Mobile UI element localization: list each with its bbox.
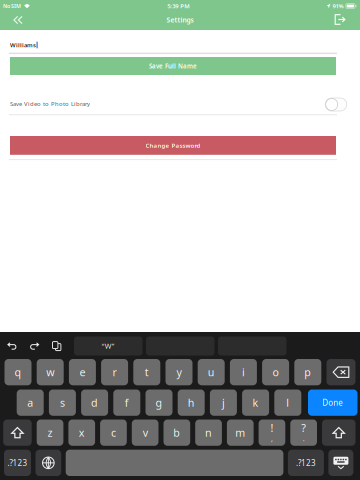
- button[interactable]: i: [230, 359, 257, 385]
- staticText: .?123: [7, 457, 27, 468]
- staticText: k: [253, 395, 259, 410]
- staticText: “W”: [102, 341, 115, 351]
- staticText: Williams: [10, 41, 36, 49]
- button[interactable]: f: [113, 389, 140, 416]
- button[interactable]: u: [198, 359, 225, 385]
- button[interactable]: .?123: [4, 450, 31, 476]
- button[interactable]: !: [259, 419, 285, 446]
- button[interactable]: x: [68, 419, 95, 446]
- staticText: ?: [301, 420, 306, 435]
- button[interactable]: v: [132, 419, 158, 446]
- button[interactable]: Done: [308, 389, 357, 416]
- staticText: o: [273, 365, 279, 379]
- button[interactable]: y: [165, 359, 192, 385]
- staticText: j: [222, 395, 225, 410]
- button[interactable]: Back: [7, 12, 29, 28]
- staticText: i: [242, 365, 245, 379]
- staticText: Settings: [166, 15, 193, 25]
- button[interactable]: Next keyboard: [35, 450, 61, 476]
- staticText: Save Full Name: [149, 62, 197, 70]
- staticText: q: [14, 365, 21, 379]
- staticText: No SIM: [3, 2, 21, 10]
- button[interactable]: g: [145, 389, 172, 416]
- button[interactable]: s: [49, 389, 76, 416]
- staticText: u: [208, 365, 215, 379]
- staticText: y: [176, 365, 181, 379]
- staticText: n: [205, 425, 212, 440]
- staticText: v: [143, 425, 148, 440]
- button[interactable]: q: [4, 359, 31, 385]
- button[interactable]: “W”: [74, 336, 142, 355]
- staticText: f: [125, 395, 129, 410]
- button[interactable]: .?123: [288, 450, 324, 476]
- staticText: c: [111, 425, 116, 440]
- button[interactable]: ?: [290, 419, 317, 446]
- button[interactable]: e: [69, 359, 96, 385]
- button[interactable]: p: [294, 359, 321, 385]
- button[interactable]: Shift: [322, 419, 355, 446]
- staticText: m: [235, 425, 245, 440]
- staticText: ,: [271, 433, 273, 443]
- button[interactable]: Change Password: [10, 136, 336, 155]
- button[interactable]: Save Video to Photo Library: [322, 95, 350, 113]
- staticText: w: [46, 365, 54, 379]
- staticText: t: [145, 365, 149, 379]
- button[interactable]: j: [210, 389, 237, 416]
- button[interactable]: a: [17, 389, 44, 416]
- button[interactable]: h: [178, 389, 205, 416]
- button[interactable]: o: [262, 359, 289, 385]
- staticText: d: [91, 395, 98, 410]
- staticText: s: [60, 395, 65, 410]
- button[interactable]: n: [195, 419, 222, 446]
- staticText: .?123: [296, 457, 316, 468]
- staticText: !: [270, 420, 273, 435]
- staticText: l: [286, 395, 289, 410]
- staticText: r: [113, 365, 117, 379]
- button[interactable]: Redo: [29, 336, 40, 355]
- staticText: Change Password: [145, 141, 200, 149]
- staticText: h: [188, 395, 195, 410]
- staticText: e: [79, 365, 85, 379]
- button[interactable]: l: [274, 389, 301, 416]
- button[interactable]: b: [163, 419, 190, 446]
- button[interactable]: z: [37, 419, 63, 446]
- button[interactable]: Shift: [3, 419, 32, 446]
- button[interactable]: Hide keyboard: [328, 450, 353, 476]
- staticText: p: [304, 365, 311, 379]
- staticText: Save Video to Photo Library: [10, 100, 90, 108]
- button[interactable]: w: [37, 359, 64, 385]
- staticText: x: [79, 425, 85, 440]
- button[interactable]: Delete: [326, 359, 355, 385]
- button[interactable]: d: [81, 389, 108, 416]
- button[interactable]: Undo: [6, 336, 17, 355]
- button[interactable]: r: [101, 359, 128, 385]
- staticText: 91%: [333, 2, 344, 10]
- staticText: g: [155, 395, 162, 410]
- staticText: .: [303, 433, 305, 443]
- staticText: a: [27, 395, 33, 410]
- button[interactable]: m: [227, 419, 254, 446]
- button[interactable]: t: [133, 359, 160, 385]
- staticText: 5:39 PM: [167, 2, 189, 10]
- staticText: z: [48, 425, 53, 440]
- staticText: Done: [322, 397, 343, 408]
- button[interactable]: Sign out: [329, 11, 351, 27]
- button[interactable]: k: [242, 389, 269, 416]
- button[interactable]: Paste: [51, 336, 61, 355]
- button[interactable]: Save Full Name: [10, 57, 336, 75]
- button[interactable]: c: [100, 419, 127, 446]
- staticText: b: [173, 425, 180, 440]
